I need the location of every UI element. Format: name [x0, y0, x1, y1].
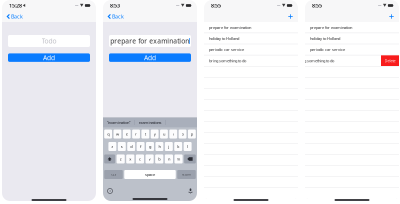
staticText: m: [176, 156, 180, 162]
button[interactable]: examinations: [134, 117, 165, 127]
staticText: 123: [110, 173, 116, 176]
staticText: 8:55: [312, 2, 322, 9]
staticText: periodic car service: [209, 47, 244, 52]
staticText: b: [158, 156, 160, 162]
button[interactable]: p: [188, 129, 196, 138]
button[interactable]: b: [155, 154, 163, 163]
staticText: x: [129, 156, 131, 162]
staticText: p: [191, 131, 193, 137]
button[interactable]: c: [136, 154, 144, 163]
staticText: t: [145, 131, 146, 137]
button[interactable]: holiday to Holland: [305, 33, 399, 44]
staticText: holiday to Holland: [310, 36, 340, 41]
staticText: k: [177, 144, 179, 149]
button[interactable]: Emoji keyboard: [107, 188, 112, 193]
button[interactable]: return: [177, 170, 196, 179]
staticText: prepare for examination: [110, 37, 189, 45]
staticText: g: [149, 144, 151, 149]
button[interactable]: z: [116, 154, 125, 163]
button[interactable]: a: [108, 142, 116, 151]
staticText: w: [116, 131, 119, 137]
staticText: periodic car service: [310, 47, 345, 52]
button[interactable]: holiday to Holland: [204, 33, 298, 44]
button[interactable]: space: [124, 170, 176, 179]
button[interactable]: Add: [283, 11, 298, 22]
button[interactable]: d: [127, 142, 135, 151]
button[interactable]: k: [174, 142, 182, 151]
button[interactable]: q: [104, 129, 112, 138]
staticText: 15:28: [9, 2, 22, 9]
button[interactable]: r: [132, 129, 140, 138]
staticText: return: [182, 173, 191, 176]
button[interactable]: Delete: [381, 55, 399, 66]
button[interactable]: Delete: [184, 154, 196, 163]
button[interactable]: n: [165, 154, 173, 163]
button[interactable]: “examination”: [103, 117, 134, 127]
button[interactable]: y: [151, 129, 159, 138]
staticText: f: [140, 144, 141, 149]
staticText: d: [130, 144, 132, 149]
staticText: y: [154, 131, 156, 137]
button[interactable]: Back: [2, 11, 96, 22]
staticText: prepare for examination: [310, 25, 352, 30]
staticText: o: [182, 131, 184, 137]
staticText: h: [158, 144, 160, 149]
staticText: e: [126, 131, 128, 137]
staticText: examinations: [138, 120, 161, 125]
staticText: holiday to Holland: [209, 36, 239, 41]
button[interactable]: l: [184, 142, 192, 151]
button[interactable]: prepare for examination: [305, 22, 399, 33]
staticText: q: [107, 131, 109, 137]
button[interactable]: m: [174, 154, 183, 163]
button[interactable]: Add: [8, 53, 90, 62]
button[interactable]: Add: [384, 11, 399, 22]
button[interactable]: 123: [104, 170, 123, 179]
staticText: n: [168, 156, 170, 162]
staticText: 8:55: [211, 2, 221, 9]
button[interactable]: g: [146, 142, 154, 151]
staticText: s: [121, 144, 123, 149]
button[interactable]: bring something to do: [204, 55, 298, 66]
button[interactable]: f: [137, 142, 145, 151]
button[interactable]: j: [165, 142, 173, 151]
staticText: bring something to do: [297, 58, 334, 63]
button[interactable]: o: [179, 129, 186, 138]
staticText: a: [111, 144, 113, 149]
staticText: z: [120, 156, 122, 162]
button[interactable]: Dictation: [188, 188, 192, 194]
button[interactable]: prepare for examination: [204, 22, 298, 33]
button[interactable]: Shift: [104, 154, 115, 163]
staticText: u: [163, 131, 165, 137]
staticText: i: [173, 131, 174, 137]
staticText: r: [135, 131, 137, 137]
button[interactable]: s: [118, 142, 126, 151]
staticText: l: [187, 144, 188, 149]
button[interactable]: e: [123, 129, 131, 138]
staticText: bring something to do: [209, 58, 246, 63]
button[interactable]: x: [126, 154, 134, 163]
button[interactable]: Back: [103, 11, 197, 22]
button[interactable]: periodic car service: [204, 44, 298, 55]
button[interactable]: h: [155, 142, 163, 151]
staticText: c: [139, 156, 141, 162]
button[interactable]: i: [169, 129, 177, 138]
staticText: Add: [144, 53, 156, 62]
staticText: 8:53: [110, 2, 120, 9]
button[interactable]: u: [160, 129, 168, 138]
button[interactable]: bring something to do: [305, 55, 381, 66]
staticText: Back: [112, 13, 124, 20]
button[interactable]: Add: [109, 53, 191, 62]
button[interactable]: w: [113, 129, 121, 138]
staticText: :): [109, 189, 111, 193]
staticText: Add: [43, 53, 55, 62]
staticText: Delete: [384, 58, 395, 63]
staticText: Back: [11, 13, 23, 20]
staticText: prepare for examination: [209, 25, 251, 30]
staticText: v: [149, 156, 151, 162]
button[interactable]: v: [145, 154, 154, 163]
button[interactable]: t: [141, 129, 149, 138]
staticText: “examination”: [107, 120, 130, 125]
button[interactable]: periodic car service: [305, 44, 399, 55]
staticText: j: [168, 144, 169, 149]
staticText: space: [145, 172, 155, 177]
